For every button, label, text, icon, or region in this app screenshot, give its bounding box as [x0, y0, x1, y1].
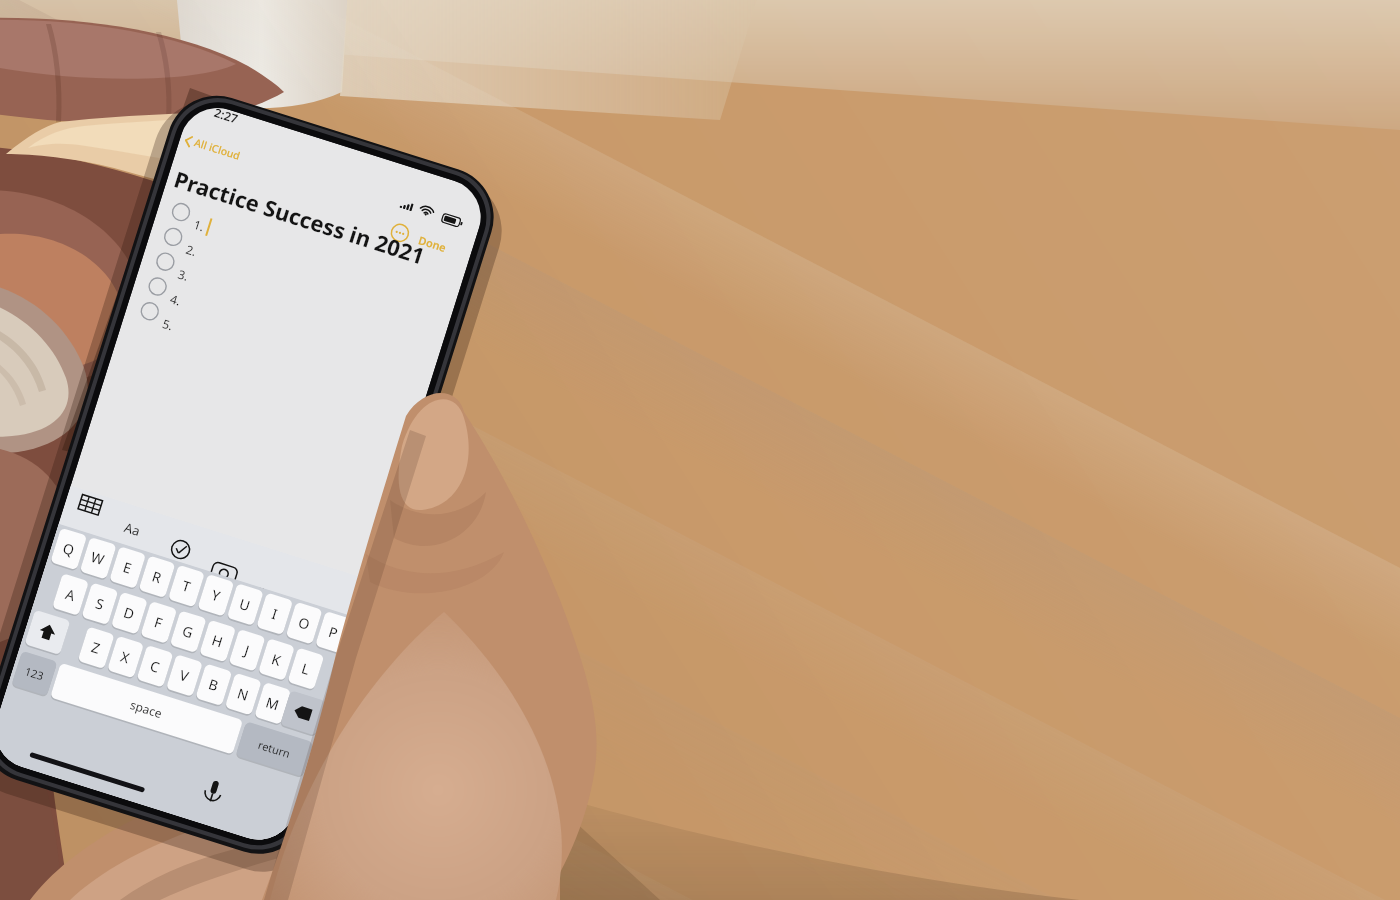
button[interactable]: Notes checklist on a phone held in a han… [0, 0, 1400, 900]
